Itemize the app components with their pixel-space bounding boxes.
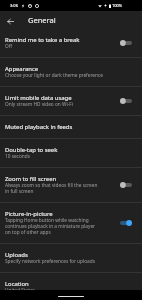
staticText: Remind me to take a break	[5, 37, 80, 43]
staticText: Uploads	[5, 252, 28, 258]
staticText: Muted playback in feeds	[5, 124, 73, 130]
staticText: Picture-in-picture	[5, 211, 53, 217]
staticText: Zoom to fill screen	[5, 176, 57, 182]
staticText: Location	[5, 281, 29, 287]
staticText: Appearance	[5, 66, 39, 72]
staticText: Only stream HD video on Wi-Fi	[5, 101, 73, 107]
staticText: General	[28, 15, 56, 25]
button[interactable]: Uploads	[0, 244, 142, 272]
button[interactable]: Toggle off	[116, 37, 136, 49]
button[interactable]: Back	[2, 13, 18, 29]
button[interactable]: Zoom to fill screen	[0, 168, 142, 202]
button[interactable]: Toggle off	[116, 95, 136, 107]
button[interactable]: Appearance	[0, 58, 142, 86]
staticText: Off	[5, 43, 12, 49]
button[interactable]: Toggle off	[116, 179, 136, 191]
button[interactable]: Location	[0, 273, 142, 300]
button[interactable]: Picture-in-picture	[0, 203, 142, 243]
staticText: 100%	[112, 3, 123, 8]
button[interactable]: Toggle on	[116, 217, 136, 229]
button[interactable]: Double-tap to seek	[0, 139, 142, 167]
button[interactable]: Limit mobile data usage	[0, 87, 142, 115]
staticText: Double-tap to seek	[5, 147, 58, 153]
staticText: Tapping Home button while watching conti…	[5, 217, 100, 235]
button[interactable]: Remind me to take a break	[0, 29, 142, 57]
staticText: 10 seconds	[5, 153, 30, 159]
staticText: United States	[5, 287, 35, 292]
button[interactable]: Muted playback in feeds	[0, 116, 142, 138]
staticText: Choose your light or dark theme preferen…	[5, 72, 103, 78]
staticText: 3:06	[10, 3, 18, 8]
staticText: Always zoom so that videos fill the scre…	[5, 182, 100, 194]
staticText: Limit mobile data usage	[5, 95, 72, 101]
staticText: Specify network preferences for uploads	[5, 258, 95, 264]
